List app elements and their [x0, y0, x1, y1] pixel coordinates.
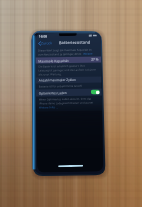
staticText: Anzahl maximaler Zyklen [39, 78, 77, 83]
button[interactable]: Optimiertes Laden [36, 88, 102, 97]
button[interactable]: Zurück [37, 39, 53, 47]
button[interactable]: Weitere Infos ... [83, 51, 99, 56]
button[interactable]: Maximale Kapazität [35, 56, 101, 64]
button[interactable]: Anzahl maximaler Zyklen [36, 76, 102, 84]
staticText: 27 % [91, 57, 99, 62]
staticText: iPhone deine Ladegewohnheiten und wartet [39, 101, 94, 106]
staticText: als zuvor. Wartung. [38, 72, 63, 76]
staticText: Zurück [41, 40, 52, 45]
staticText: Optimiertes Laden [39, 91, 67, 95]
button[interactable]: Optimiertes Laden toggle [91, 89, 100, 95]
staticText: Wenn Optimiertes Laden aktiv ist, lernt … [39, 97, 92, 101]
staticText: 16:08 [39, 34, 48, 39]
button[interactable]: Weitere Infos ... [39, 105, 58, 109]
staticText: Leistung ist geringer, und die Laufzeit … [38, 67, 96, 72]
staticText: Maximale Kapazität [38, 58, 69, 62]
staticText: Batteriezustand [59, 40, 91, 45]
staticText: Batterie ist für unbestimmte Anzahl [39, 84, 83, 89]
staticText: Dieser Wert zeigt die maximale Kapazität… [38, 47, 99, 53]
staticText: zum Neuzustand. Je geringer, desto [38, 52, 82, 57]
staticText: Die Batterie ist erheblich gealtert. Ihr… [38, 64, 85, 68]
